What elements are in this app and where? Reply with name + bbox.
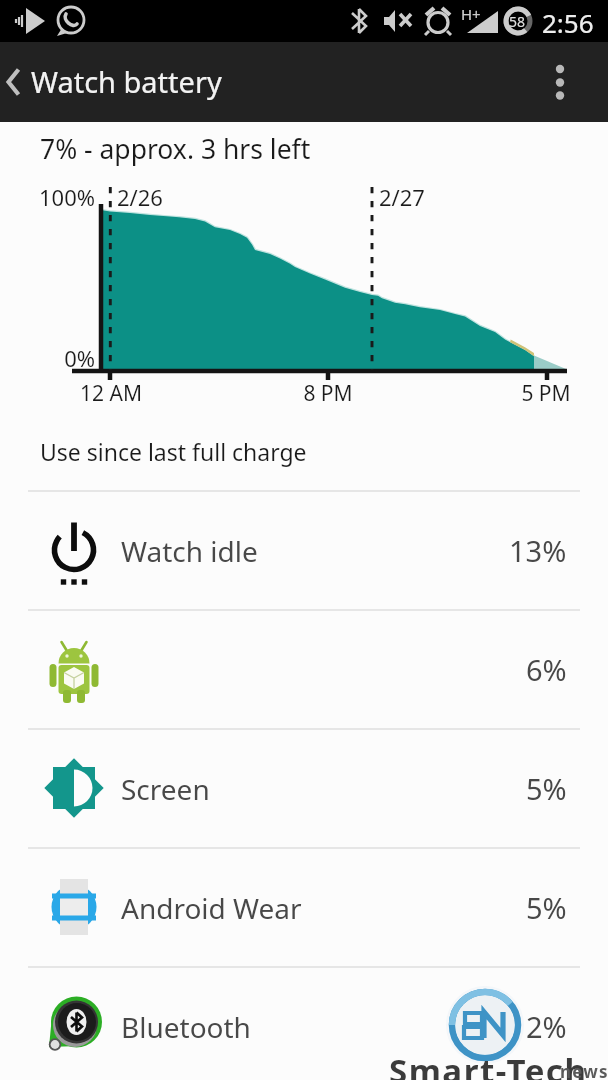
button[interactable]: 6% (0, 611, 608, 728)
staticText: 0% (0, 343, 95, 373)
staticText: Android Wear (121, 889, 302, 927)
staticText: 58 (509, 12, 526, 31)
staticText: 5 PM (446, 379, 608, 408)
button[interactable]: Screen (0, 730, 608, 847)
staticText: Bluetooth (121, 1008, 251, 1046)
button[interactable]: Watch idle (0, 492, 608, 609)
staticText: Use since last full charge (40, 436, 307, 467)
staticText: Screen (121, 770, 210, 808)
staticText: 100% (0, 182, 95, 212)
button[interactable]: Back (0, 42, 31, 122)
staticText: news (560, 1060, 608, 1080)
staticText: 2/27 (379, 182, 579, 212)
staticText: Watch idle (121, 532, 258, 570)
staticText: 5% (526, 888, 567, 927)
staticText: 12 AM (11, 379, 211, 408)
staticText: 2:56 (542, 5, 594, 40)
staticText: 7% - approx. 3 hrs left (40, 131, 311, 167)
staticText: 6% (526, 650, 567, 689)
staticText: Smart-Tech (389, 1048, 588, 1080)
button[interactable]: Android Wear (0, 849, 608, 966)
staticText: 5% (526, 769, 567, 808)
button[interactable]: Bluetooth (0, 968, 608, 1080)
button[interactable]: More options (552, 42, 608, 122)
staticText: 2% (526, 1007, 567, 1046)
staticText: Watch battery (31, 62, 222, 101)
staticText: H+ (461, 4, 481, 24)
staticText: 2/26 (117, 182, 317, 212)
staticText: 8 PM (228, 379, 428, 408)
staticText: 13% (509, 531, 567, 570)
